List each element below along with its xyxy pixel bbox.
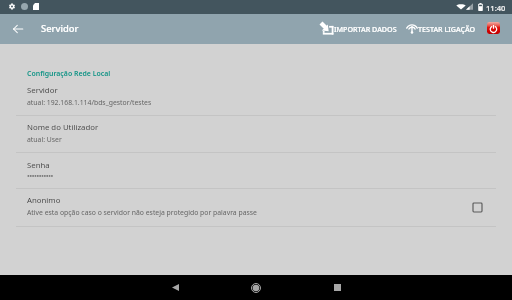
button[interactable]: TESTAR LIGAÇÃO: [403, 14, 479, 44]
staticText: Anonimo: [27, 195, 61, 206]
staticText: TESTAR LIGAÇÃO: [418, 24, 476, 34]
staticText: atual: User: [27, 135, 62, 144]
staticText: Senha: [27, 160, 50, 171]
staticText: atual: 192.168.1.114/bds_gestor/testes: [27, 98, 152, 107]
staticText: Servidor: [27, 85, 58, 96]
button[interactable]: Nome do Utilizador: [0, 114, 512, 151]
button[interactable]: Anonimo: [0, 187, 512, 224]
button[interactable]: Senha: [0, 152, 512, 189]
staticText: Servidor: [41, 22, 79, 35]
button[interactable]: IMPORTAR DADOS: [317, 14, 400, 44]
button[interactable]: Power: [487, 22, 500, 34]
button[interactable]: Back: [161, 275, 189, 300]
button[interactable]: Home: [242, 275, 270, 300]
staticText: 11:40: [486, 3, 506, 13]
staticText: Nome do Utilizador: [27, 122, 99, 133]
button[interactable]: Back: [7, 14, 29, 44]
button[interactable]: Servidor: [0, 77, 512, 114]
staticText: Configuração Rede Local: [27, 69, 111, 78]
button[interactable]: Anonimo checkbox: [467, 197, 487, 217]
staticText: Ative esta opção caso o servidor não est…: [27, 208, 257, 217]
button[interactable]: Recents: [323, 275, 351, 300]
staticText: IMPORTAR DADOS: [334, 24, 397, 34]
